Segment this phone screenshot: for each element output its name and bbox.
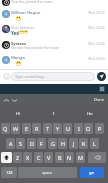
button[interactable]: O [84, 123, 93, 134]
staticText: go [89, 170, 95, 176]
staticText: C [37, 154, 41, 161]
button[interactable]: J [69, 138, 78, 149]
staticText: O [86, 125, 91, 132]
staticText: A [9, 140, 13, 147]
button[interactable]: go [80, 167, 104, 178]
button[interactable]: Ho [72, 105, 108, 122]
staticText: Vernon has joined the room [11, 45, 60, 50]
staticText: Mango [11, 55, 26, 61]
staticText: D [30, 140, 34, 147]
button[interactable]: I [74, 123, 83, 134]
button[interactable]: G [48, 138, 57, 149]
button[interactable]: D [27, 138, 36, 149]
button[interactable]: A [6, 138, 15, 149]
staticText: V [47, 154, 51, 161]
staticText: J [73, 140, 75, 147]
staticText: F [40, 140, 43, 147]
staticText: Hi [16, 111, 20, 116]
staticText: N [67, 154, 72, 161]
staticText: 123 [6, 170, 13, 175]
staticText: G [51, 140, 55, 147]
button[interactable]: Y [53, 123, 62, 134]
staticText: U [66, 125, 70, 132]
button[interactable]: Q [1, 123, 10, 134]
button[interactable]: T [43, 123, 52, 134]
staticText: Yes! [11, 30, 20, 36]
staticText: X [26, 154, 30, 161]
staticText: B [58, 154, 62, 161]
staticText: W [13, 125, 19, 132]
staticText: space [42, 170, 53, 175]
staticText: L [93, 140, 96, 147]
button[interactable]: P [95, 123, 104, 134]
staticText: P [98, 125, 102, 132]
button[interactable]: Hi [0, 105, 36, 122]
button[interactable]: I [36, 105, 72, 122]
button[interactable]: Previous field [2, 96, 10, 104]
button[interactable]: X [23, 152, 32, 163]
button[interactable]: C [34, 152, 43, 163]
staticText: Y [56, 125, 60, 132]
staticText: H [61, 140, 65, 147]
button[interactable]: M [76, 152, 85, 163]
staticText: I [78, 125, 80, 132]
staticText: E [25, 125, 28, 132]
button[interactable]: W [11, 123, 20, 134]
staticText: Z [16, 154, 20, 161]
staticText: William Hague [11, 10, 41, 16]
button[interactable]: Next field [10, 96, 18, 104]
staticText: T [46, 125, 49, 132]
staticText: M [78, 154, 83, 161]
button[interactable]: F [37, 138, 46, 149]
button[interactable]: H [58, 138, 67, 149]
button[interactable]: Type something... [11, 72, 95, 81]
button[interactable]: Keyboard menu [99, 86, 105, 92]
button[interactable]: Backspace [88, 152, 106, 163]
staticText: Q [3, 125, 8, 132]
button[interactable]: E [22, 123, 31, 134]
staticText: Vica has joined the room [11, 0, 53, 4]
staticText: Yuri Sidorov [11, 25, 35, 31]
staticText: Ho [87, 111, 93, 116]
staticText: Done [94, 97, 105, 102]
staticText: S [19, 140, 22, 147]
staticText: Wed 20:46 [88, 25, 105, 30]
staticText: R [35, 125, 39, 132]
button[interactable]: Send [97, 72, 106, 81]
staticText: Wed 20:48 [88, 41, 105, 46]
button[interactable]: B [55, 152, 64, 163]
staticText: System [11, 41, 27, 47]
button[interactable]: V [44, 152, 53, 163]
button[interactable]: S [16, 138, 25, 149]
button[interactable]: N [65, 152, 74, 163]
staticText: Wed 20:45 [88, 10, 105, 15]
button[interactable]: Emoji [3, 73, 10, 80]
button[interactable]: U [63, 123, 72, 134]
button[interactable]: Shift [1, 152, 12, 163]
button[interactable]: space [18, 167, 77, 178]
staticText: Wed 20:50 [88, 56, 105, 61]
button[interactable]: L [90, 138, 99, 149]
button[interactable]: K [79, 138, 88, 149]
staticText: K [82, 140, 86, 147]
button[interactable]: 123 [1, 167, 17, 178]
staticText: Type something... [15, 74, 47, 79]
button[interactable]: Z [13, 152, 22, 163]
staticText: I [53, 111, 55, 116]
button[interactable]: Done [91, 95, 108, 104]
button[interactable]: R [32, 123, 41, 134]
